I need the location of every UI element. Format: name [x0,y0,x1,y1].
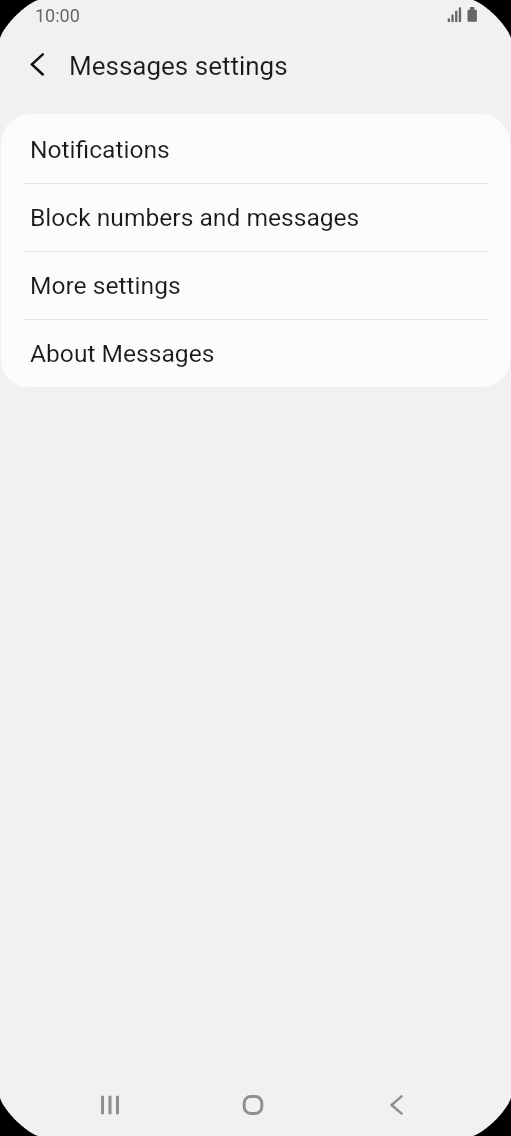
staticText: Block numbers and messages [30,203,360,232]
button[interactable]: Block numbers and messages [1,182,510,250]
staticText: Notifications [30,135,170,164]
button[interactable]: Notifications [1,114,510,182]
staticText: About Messages [30,339,215,368]
button[interactable]: Navigate up [13,41,60,88]
staticText: 10:00 [35,5,80,26]
button[interactable]: Back [324,1074,467,1136]
button[interactable]: Recent apps [38,1074,181,1136]
button[interactable]: Home [181,1074,324,1136]
staticText: More settings [30,271,181,300]
staticText: Messages settings [69,51,288,81]
button[interactable]: About Messages [1,318,510,386]
button[interactable]: More settings [1,250,510,318]
